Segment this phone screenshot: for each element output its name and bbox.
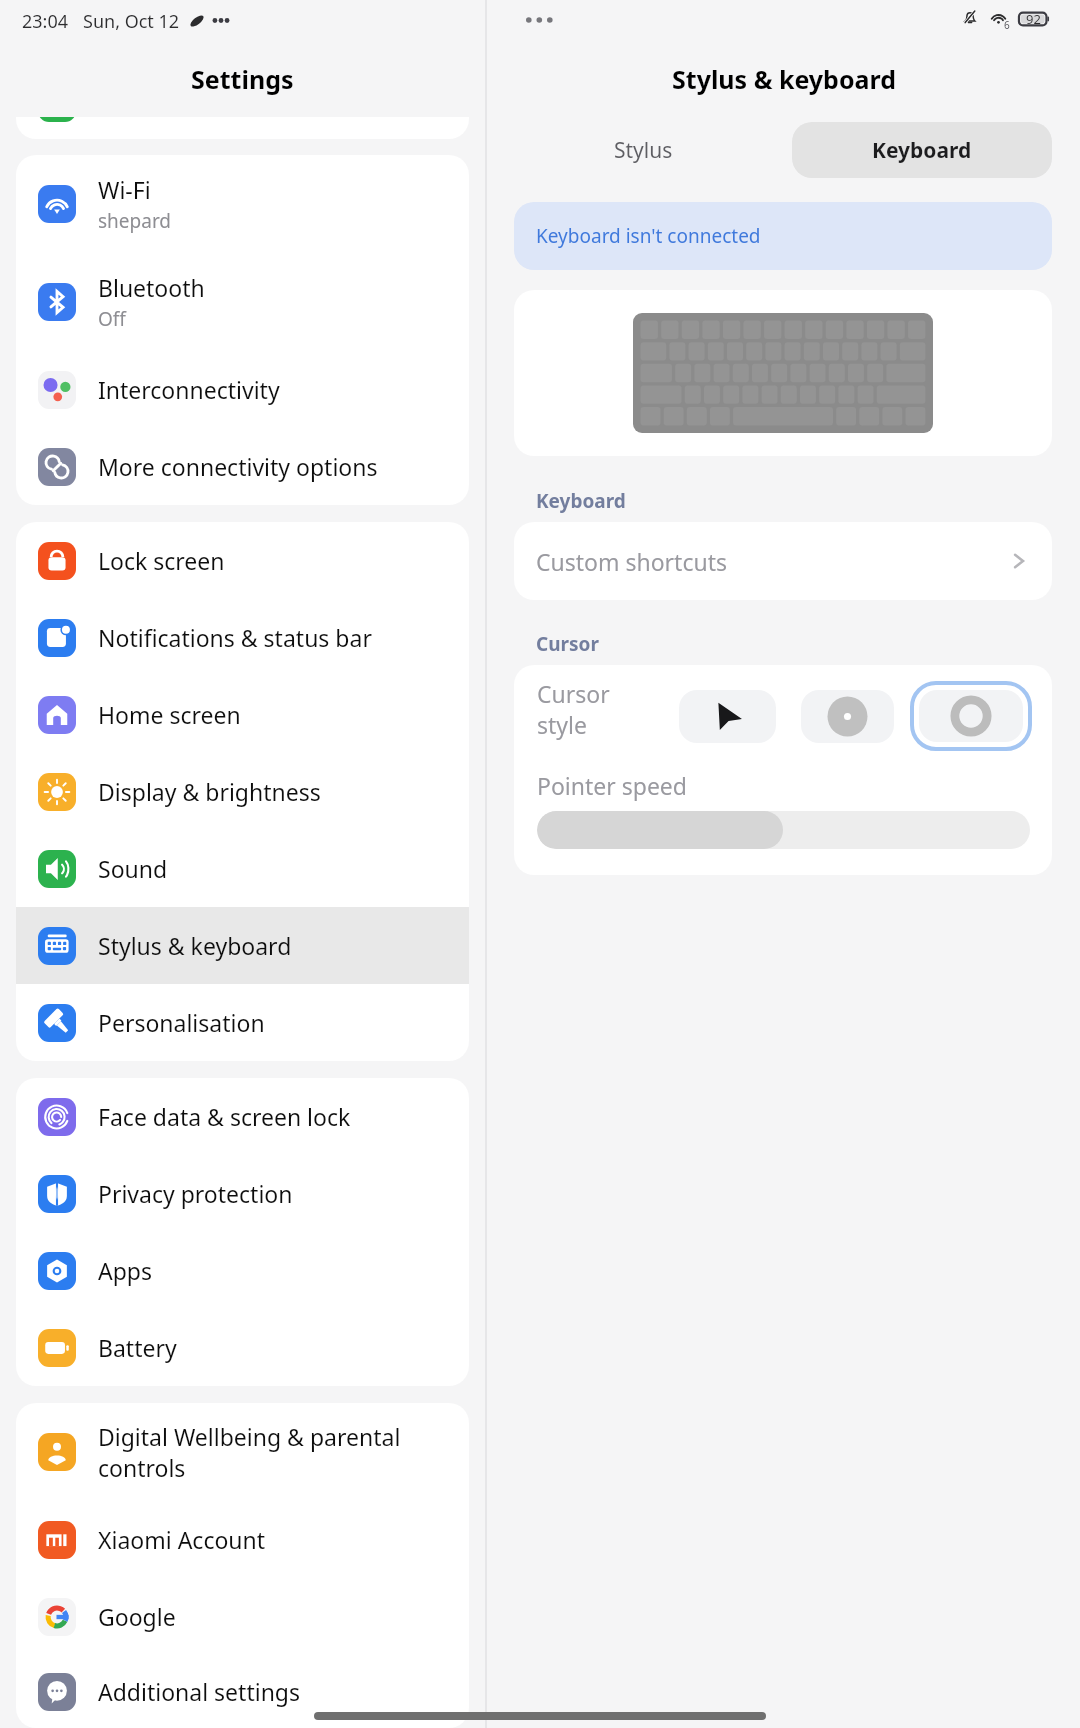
button[interactable]: Display & brightness [16,753,469,830]
staticText: shepard [98,208,172,234]
staticText: Display & brightness [98,776,321,807]
staticText: Stylus & keyboard [98,930,292,961]
button[interactable]: Arrow cursor style [679,690,776,743]
staticText: Personalisation [98,1007,265,1038]
staticText: Digital Wellbeing & parental [98,1421,401,1452]
button[interactable]: Additional settings [16,1655,469,1728]
button[interactable]: Dot cursor style [801,690,894,743]
staticText: Stylus & keyboard [672,62,896,96]
staticText: Privacy protection [98,1178,293,1209]
staticText: Lock screen [98,545,225,576]
staticText: More connectivity options [98,451,378,482]
staticText: Xiaomi Account [98,1524,266,1555]
button[interactable]: Bluetooth [16,253,469,351]
staticText: Stylus [614,136,673,165]
staticText: Custom shortcuts [536,546,727,577]
button[interactable]: More options [526,7,566,33]
button[interactable]: Apps [16,1232,469,1309]
staticText: Face data & screen lock [98,1101,351,1132]
button[interactable]: Stylus & keyboard [16,907,469,984]
button[interactable]: Stylus [514,122,772,178]
staticText: Settings [191,62,294,96]
button[interactable]: Interconnectivity [16,351,469,428]
staticText: Battery [98,1332,177,1363]
staticText: Keyboard [872,136,972,165]
button[interactable]: Digital Wellbeing & parental [16,1403,469,1501]
staticText: Interconnectivity [98,374,280,405]
staticText: Off [98,306,126,332]
button[interactable]: Home screen [16,676,469,753]
staticText: 23:04 [22,9,69,34]
button[interactable]: Lock screen [16,522,469,599]
staticText: Notifications & status bar [98,622,372,653]
staticText: Additional settings [98,1676,301,1707]
staticText: Keyboard [536,488,626,514]
staticText: Cursor [537,678,610,709]
button[interactable]: More connectivity options [16,428,469,505]
staticText: Cursor [536,631,599,657]
button[interactable]: Pointer speed slider [537,811,1030,849]
button[interactable]: Notifications & status bar [16,599,469,676]
button[interactable]: Personalisation [16,984,469,1061]
staticText: Bluetooth [98,272,205,303]
button[interactable]: Custom shortcuts [514,522,1052,600]
button[interactable]: Battery [16,1309,469,1386]
staticText: Sun, Oct 12 [83,9,180,34]
button[interactable]: Google [16,1578,469,1655]
button[interactable]: Privacy protection [16,1155,469,1232]
button[interactable]: Keyboard isn't connected [514,202,1052,270]
button[interactable]: Ring cursor style, selected [919,690,1023,742]
staticText: Pointer speed [537,770,687,801]
button[interactable]: Keyboard [792,122,1052,178]
staticText: controls [98,1452,186,1483]
button[interactable]: More status icons [213,9,229,33]
button[interactable]: Sound [16,830,469,907]
staticText: Wi-Fi [98,174,151,205]
staticText: style [537,709,587,740]
staticText: Sound [98,853,168,884]
button[interactable]: Xiaomi Account [16,1501,469,1578]
button[interactable]: Face data & screen lock [16,1078,469,1155]
staticText: Home screen [98,699,241,730]
button[interactable]: Wi-Fi [16,155,469,253]
staticText: 92 [1026,10,1041,28]
staticText: 6 [1004,18,1010,32]
staticText: Keyboard isn't connected [536,223,761,249]
staticText: Google [98,1601,176,1632]
staticText: Apps [98,1255,153,1286]
